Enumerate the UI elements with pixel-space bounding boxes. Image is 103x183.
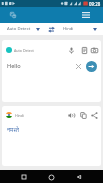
button[interactable]: Menu <box>78 7 94 23</box>
button[interactable]: Voice input <box>66 45 76 55</box>
staticText: Hindi <box>63 26 74 32</box>
button[interactable]: Back <box>73 171 85 183</box>
button[interactable]: Swap languages <box>45 23 57 35</box>
button[interactable]: Copy <box>78 110 88 120</box>
button[interactable]: Hindi <box>57 23 103 35</box>
staticText: Hindi <box>15 113 24 118</box>
button[interactable]: Auto Detect <box>0 23 45 35</box>
staticText: Auto Detect <box>14 48 34 53</box>
button[interactable]: Handwriting <box>79 45 89 55</box>
button[interactable]: Clear <box>73 61 84 72</box>
staticText: नमस्ते <box>7 126 19 134</box>
staticText: Hello <box>7 62 21 70</box>
staticText: 09:28 <box>89 1 101 7</box>
staticText: Auto Detect <box>7 26 31 32</box>
button[interactable]: Recent apps <box>18 171 30 183</box>
button[interactable]: Camera <box>89 45 99 55</box>
button[interactable]: Translate <box>6 8 20 22</box>
button[interactable]: Share <box>89 110 99 120</box>
button[interactable]: Listen <box>66 110 76 120</box>
button[interactable]: Home <box>45 171 57 183</box>
button[interactable]: Translate <box>86 61 97 72</box>
